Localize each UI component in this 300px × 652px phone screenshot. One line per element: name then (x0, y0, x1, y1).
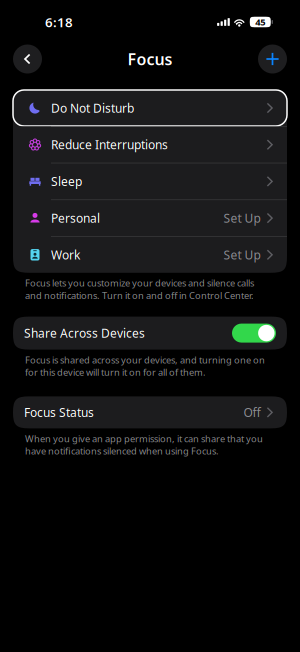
staticText: Set Up (223, 210, 260, 226)
button[interactable]: Personal (13, 200, 287, 236)
button[interactable]: Focus Status (13, 396, 287, 428)
button[interactable]: New Focus (258, 44, 287, 73)
staticText: Sleep (51, 173, 82, 189)
button[interactable]: Do Not Disturb (13, 90, 287, 126)
button[interactable]: Sleep (13, 163, 287, 199)
staticText: Focus is shared across your devices, and… (25, 354, 265, 378)
staticText: Reduce Interruptions (51, 137, 168, 153)
staticText: When you give an app permission, it can … (25, 432, 263, 457)
staticText: Focus lets you customize your devices an… (25, 277, 254, 302)
button[interactable]: Back (13, 44, 42, 73)
staticText: Focus Status (24, 404, 94, 420)
staticText: Set Up (223, 247, 260, 263)
button[interactable]: Work (13, 237, 287, 273)
button[interactable]: Reduce Interruptions (13, 127, 287, 163)
staticText: 6:18 (45, 13, 73, 31)
staticText: Off (243, 404, 260, 420)
staticText: Work (51, 247, 80, 263)
staticText: Personal (51, 210, 100, 226)
staticText: Do Not Disturb (51, 100, 134, 116)
staticText: Focus (127, 48, 172, 70)
staticText: Share Across Devices (24, 325, 145, 341)
button[interactable]: Share Across Devices (232, 324, 276, 343)
staticText: 45 (255, 16, 265, 28)
